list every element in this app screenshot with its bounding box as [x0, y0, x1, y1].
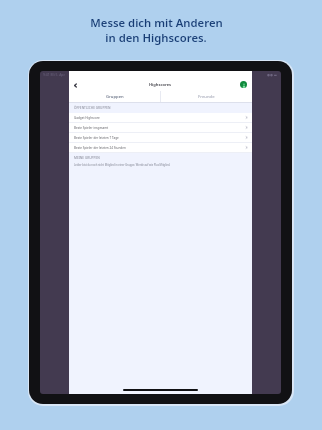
staticText: Freunde — [198, 94, 215, 100]
staticText: Gadget Highscore — [74, 116, 100, 120]
button[interactable]: Beste Spieler der letzten 7 Tage — [69, 133, 252, 142]
staticText: Beste Spieler insgesamt — [74, 126, 109, 130]
button[interactable]: Gruppen — [69, 91, 160, 102]
staticText: Gruppen — [106, 94, 124, 100]
staticText: Beste Spieler der letzten 7 Tage — [74, 136, 119, 140]
button[interactable]: Profil — [240, 81, 247, 88]
staticText: 9:41 Mi 5. Apr. — [43, 72, 66, 77]
button[interactable]: Zurück — [70, 80, 80, 90]
button[interactable]: Beste Spieler der letzten 24 Stunden — [69, 143, 252, 152]
staticText: ÖFFENTLICHE GRUPPEN — [74, 106, 111, 110]
button[interactable]: Gadget Highscore — [69, 113, 252, 122]
staticText: MEINE GRUPPEN — [74, 156, 100, 160]
staticText: in den Highscores. — [105, 30, 207, 45]
button[interactable]: Freunde — [161, 91, 252, 102]
staticText: Leider bist du noch nicht Mitglied in ei… — [74, 163, 171, 167]
staticText: Beste Spieler der letzten 24 Stunden — [74, 146, 126, 150]
staticText: Highscores — [149, 82, 172, 87]
staticText: Messe dich mit Anderen — [90, 15, 223, 30]
staticText: ●● ▬ — [267, 72, 278, 77]
button[interactable]: Beste Spieler insgesamt — [69, 123, 252, 132]
